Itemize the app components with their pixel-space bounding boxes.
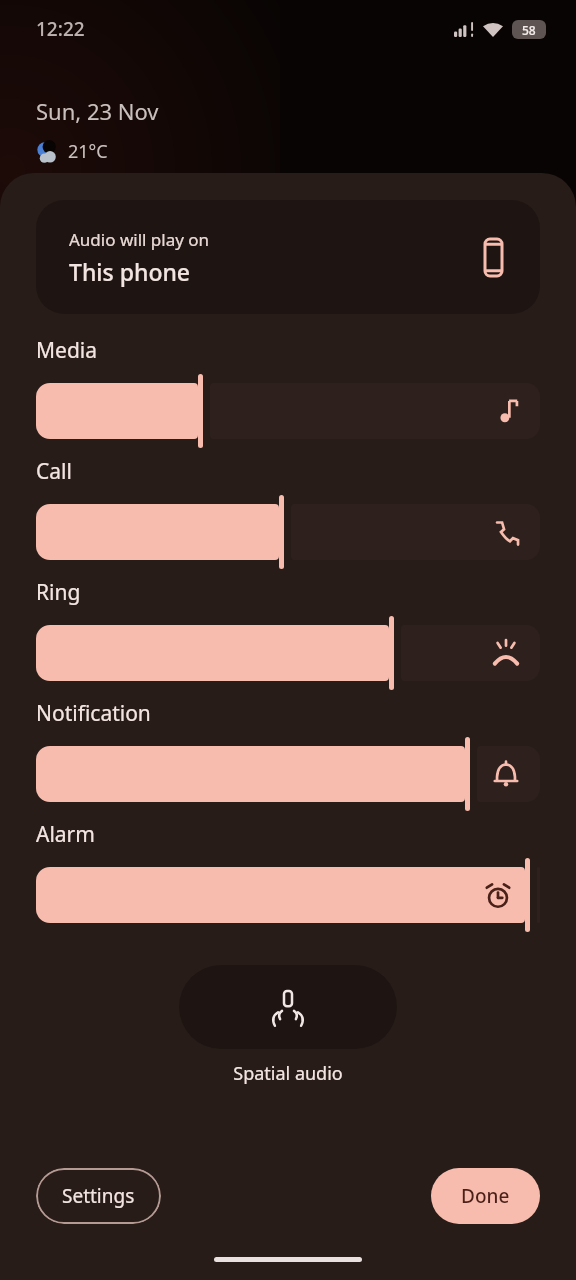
staticText: Audio will play on [69,228,210,251]
staticText: Settings [62,1183,135,1209]
button[interactable]: Ring volume [36,616,540,690]
staticText: Sun, 23 Nov [36,96,159,126]
button[interactable]: Done [431,1168,540,1224]
staticText: Call [36,457,72,486]
staticText: This phone [69,256,191,287]
other: This phone [481,239,506,276]
staticText: 58 [522,22,536,38]
staticText: Media [36,336,98,365]
button[interactable]: Spatial audio [179,965,397,1049]
button[interactable]: Notification volume [36,737,540,811]
button[interactable]: Call volume [36,495,540,569]
staticText: 12:22 [36,16,85,42]
staticText: Spatial audio [233,1061,343,1086]
staticText: Notification [36,699,151,728]
staticText: Alarm [36,820,95,849]
button[interactable]: Alarm volume [36,858,540,932]
button[interactable]: Media volume [36,374,540,448]
staticText: Ring [36,578,81,607]
staticText: 21°C [68,139,108,164]
staticText: Done [461,1183,510,1209]
button[interactable]: Audio will play on [36,200,540,314]
button[interactable]: Settings [36,1168,161,1224]
